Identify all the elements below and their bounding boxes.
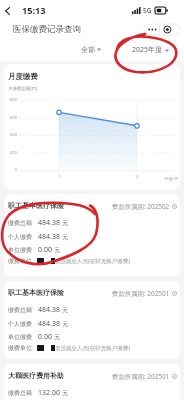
staticText: 月度缴费	[8, 72, 38, 81]
staticText: 费款所属期: 202501	[112, 289, 170, 298]
staticText: 132.00	[38, 388, 60, 398]
staticText: 200	[4, 150, 17, 156]
staticText: 费款所属期: 202501	[112, 372, 170, 381]
staticText: 灵活就业人员(在职无账户缴费)	[55, 344, 130, 352]
staticText: 484.38	[38, 218, 60, 228]
staticText: 元	[62, 219, 68, 227]
staticText: 月份/月	[164, 176, 179, 182]
staticText: 484.38	[38, 305, 60, 315]
button[interactable]: 大额医疗费用补助	[4, 364, 180, 400]
staticText: 月缴费总额(元)	[8, 85, 37, 91]
staticText: 缴费总额	[8, 389, 32, 397]
button[interactable]: More options	[144, 24, 180, 35]
staticText: 缴费总额	[8, 306, 32, 314]
staticText: 0.00	[38, 332, 52, 342]
staticText: 484.38	[38, 232, 60, 242]
staticText: 灵活就业人员(在职无账户缴费)	[55, 257, 130, 265]
staticText: 0	[4, 167, 17, 173]
staticText: 元	[54, 333, 60, 341]
staticText: 职工基本医疗保险	[8, 288, 64, 297]
staticText: 全部	[81, 45, 95, 54]
staticText: 1	[58, 174, 61, 180]
staticText: 单位缴费	[8, 333, 32, 341]
button[interactable]: 职工基本医疗保险	[4, 194, 180, 276]
staticText: 5G	[143, 6, 152, 15]
staticText: 2025年度	[132, 45, 163, 55]
staticText: 单位缴费	[8, 246, 32, 254]
staticText: 400	[4, 132, 17, 138]
staticText: 元	[62, 320, 68, 328]
button[interactable]: Back	[0, 3, 14, 19]
staticText: 484.38	[38, 319, 60, 329]
button[interactable]: 全部	[79, 43, 103, 56]
staticText: 缴费单位	[8, 257, 32, 265]
staticText: 元	[54, 246, 60, 254]
staticText: 600	[4, 115, 17, 121]
staticText: 元	[62, 233, 68, 241]
staticText: 个人缴费	[8, 320, 32, 328]
staticText: 缴费总额	[8, 219, 32, 227]
staticText: 元	[62, 389, 68, 397]
staticText: 医保缴费记录查询	[13, 24, 81, 35]
staticText: 2	[136, 174, 139, 180]
staticText: 800	[4, 97, 17, 103]
staticText: 大额医疗费用补助	[8, 371, 64, 380]
staticText: 费款所属期: 202502	[112, 202, 170, 211]
staticText: 缴费单位	[8, 344, 32, 352]
staticText: 0.00	[38, 245, 52, 255]
staticText: 15:13	[22, 4, 46, 17]
staticText: 元	[62, 306, 68, 314]
staticText: 个人缴费	[8, 233, 32, 241]
staticText: 职工基本医疗保险	[8, 201, 64, 210]
button[interactable]: 职工基本医疗保险	[4, 281, 180, 359]
button[interactable]: 2025年度	[130, 43, 171, 57]
